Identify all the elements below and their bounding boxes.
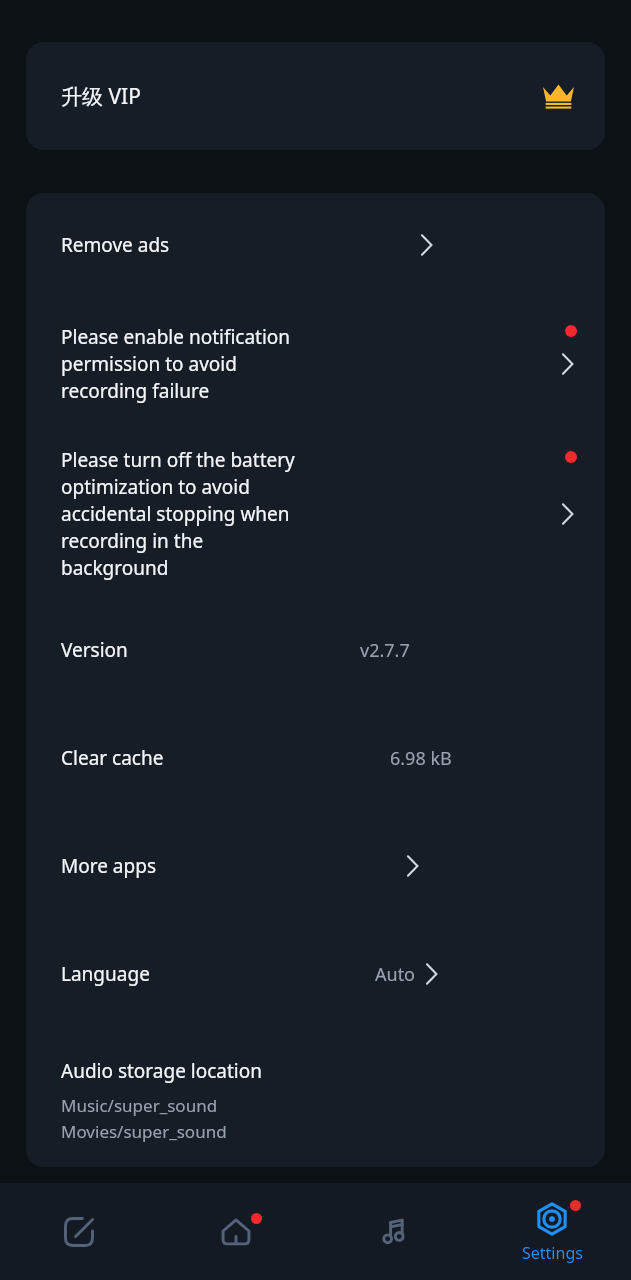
staticText: Auto	[375, 962, 416, 987]
button[interactable]: Clear cache	[26, 704, 605, 812]
staticText: Settings	[522, 1242, 583, 1264]
staticText: 升级 VIP	[61, 82, 141, 111]
staticText: Please turn off the battery optimization…	[61, 447, 311, 581]
staticText: v2.7.7	[360, 638, 410, 663]
button[interactable]: Language	[26, 920, 605, 1028]
staticText: Audio storage location	[61, 1058, 263, 1084]
staticText: Language	[61, 961, 150, 987]
button[interactable]: Please enable notification permission to…	[26, 297, 605, 431]
button[interactable]: Home	[157, 1183, 315, 1280]
staticText: Version	[61, 637, 128, 663]
button[interactable]: Music	[315, 1183, 473, 1280]
button[interactable]: 升级 VIP	[26, 42, 605, 150]
staticText: Please enable notification permission to…	[61, 324, 311, 404]
button[interactable]: Edit	[0, 1183, 157, 1280]
staticText: Clear cache	[61, 745, 164, 771]
button[interactable]: Audio storage location	[26, 1028, 605, 1167]
staticText: Music/super_sound	[61, 1094, 218, 1117]
button[interactable]: Version	[26, 596, 605, 704]
button[interactable]: Settings	[473, 1183, 631, 1280]
button[interactable]: More apps	[26, 812, 605, 920]
button[interactable]: Remove ads	[26, 193, 605, 297]
staticText: 6.98 kB	[390, 746, 452, 771]
button[interactable]: Please turn off the battery optimization…	[26, 431, 605, 596]
staticText: Remove ads	[61, 232, 170, 258]
staticText: More apps	[61, 853, 156, 879]
staticText: Movies/super_sound	[61, 1120, 227, 1143]
